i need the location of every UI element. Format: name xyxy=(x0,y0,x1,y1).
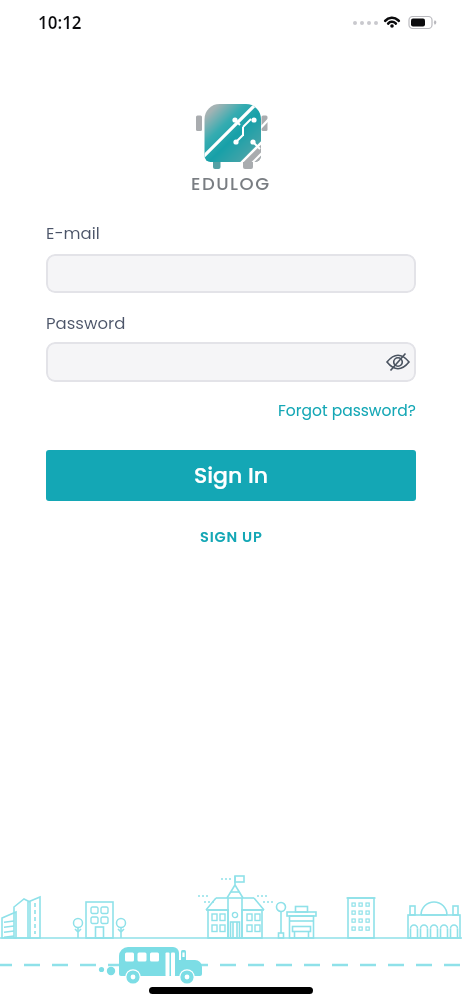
button[interactable]: Forgot password? xyxy=(278,400,416,422)
staticText: 10:12 xyxy=(38,11,82,34)
staticText: EDULOG xyxy=(191,171,271,196)
staticText: Password xyxy=(46,312,126,335)
button[interactable] xyxy=(46,254,416,293)
staticText: Sign In xyxy=(194,460,269,491)
button[interactable]: Sign In xyxy=(46,450,416,501)
button[interactable]: SIGN UP xyxy=(200,527,263,547)
button[interactable] xyxy=(46,342,416,382)
staticText: E-mail xyxy=(46,222,100,245)
